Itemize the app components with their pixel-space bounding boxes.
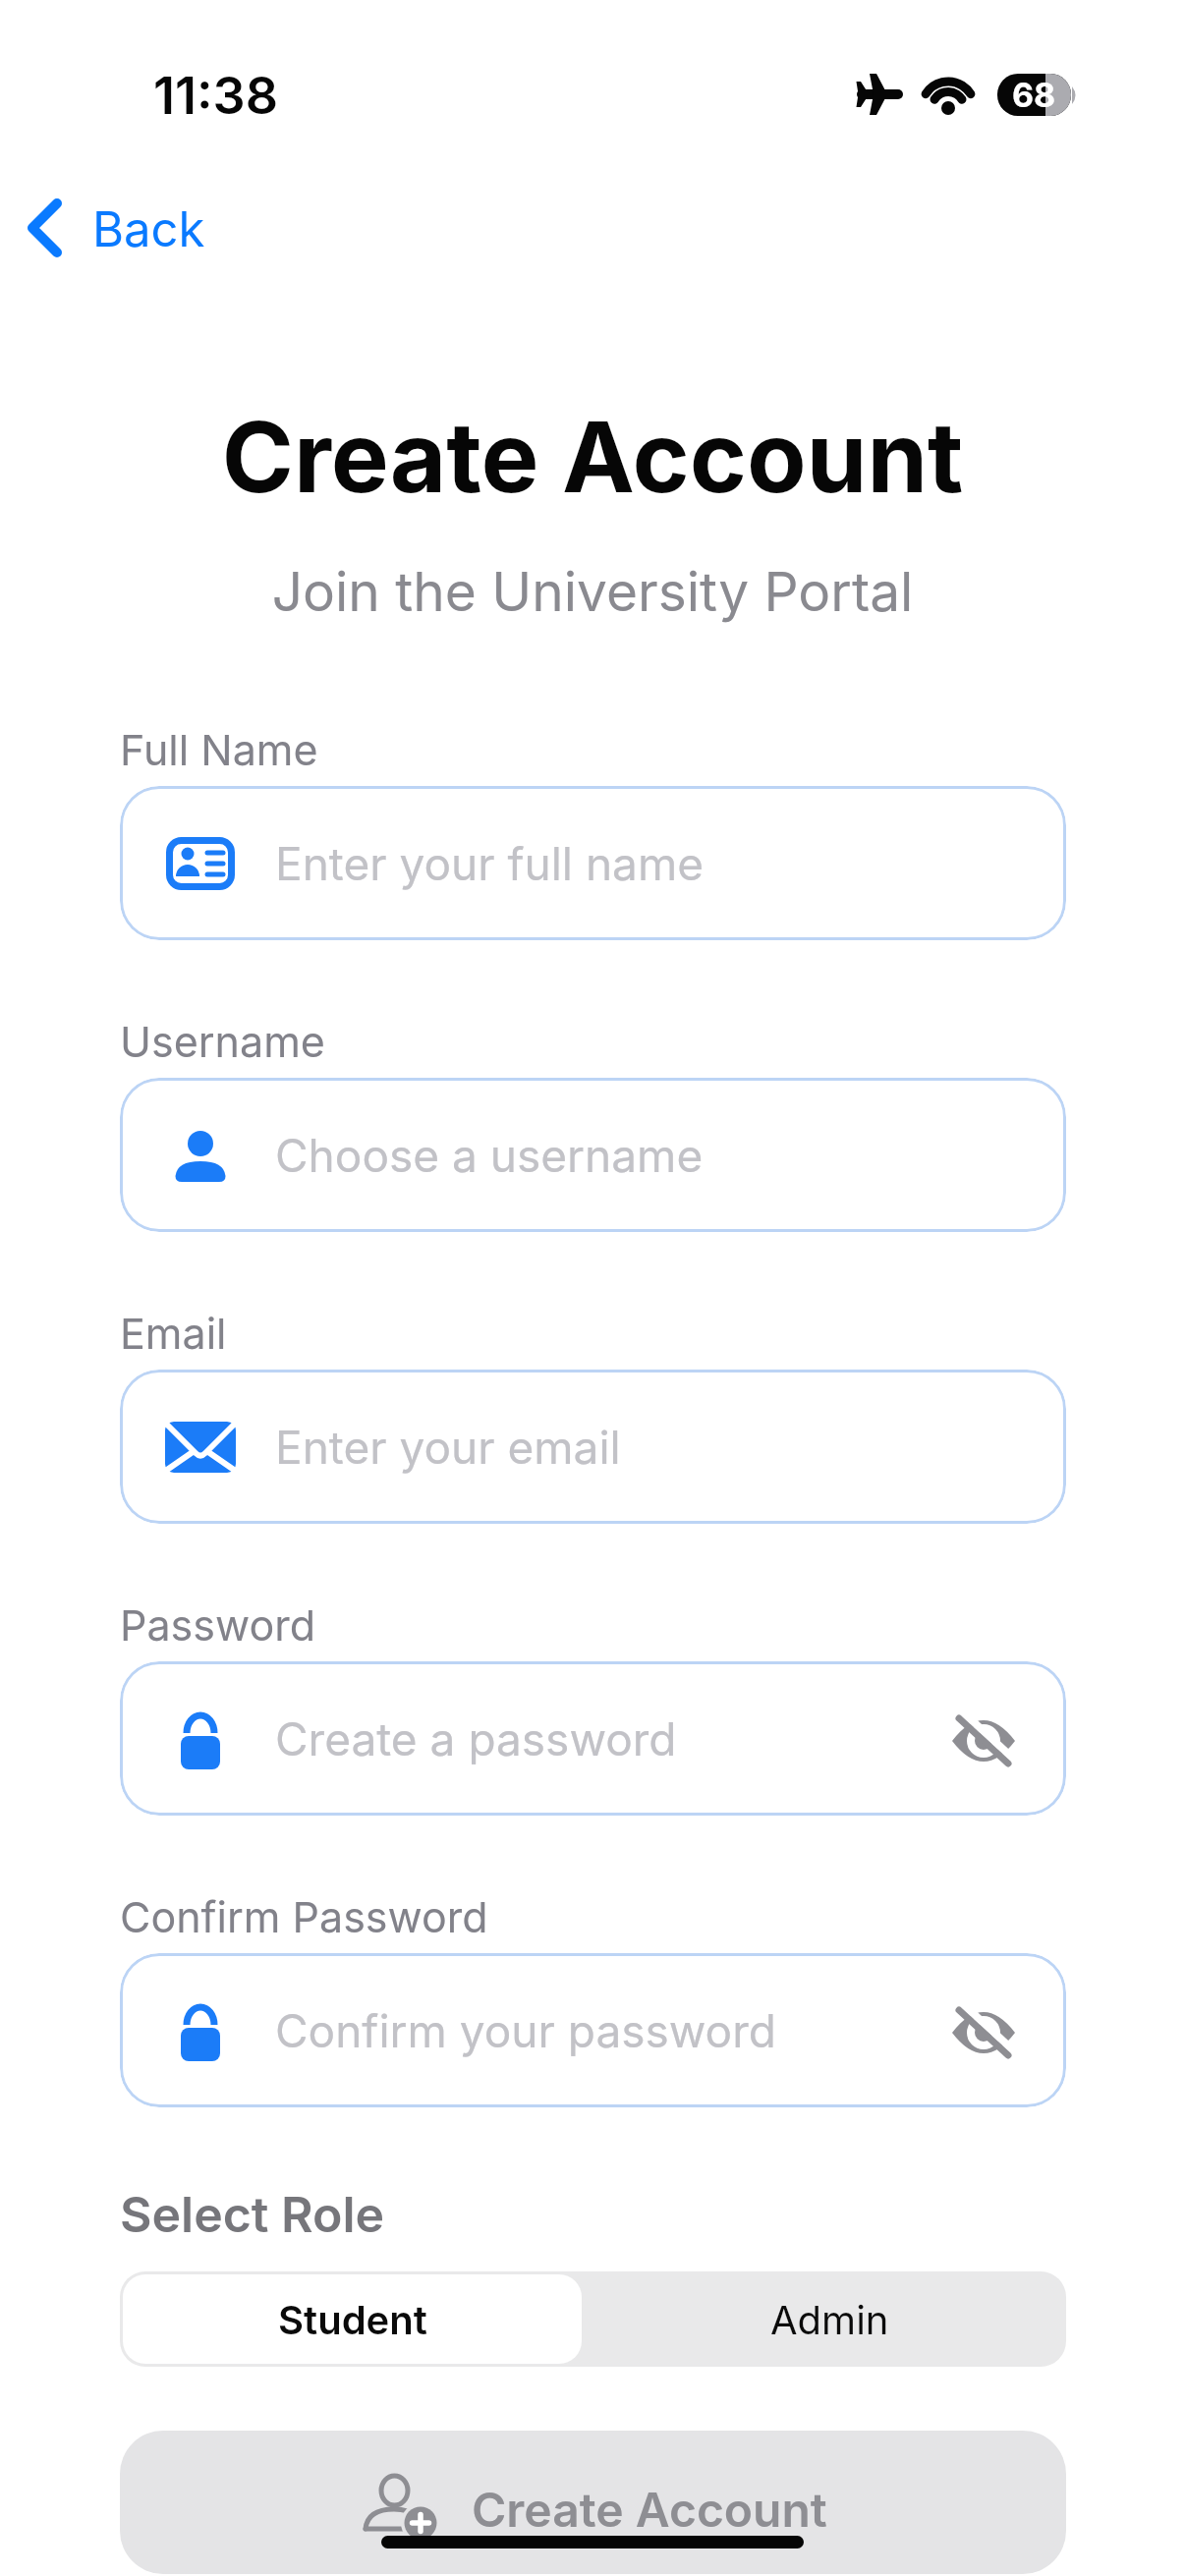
- button[interactable]: Enter your full name: [120, 786, 1066, 940]
- staticText: Choose a username: [275, 1128, 704, 1183]
- staticText: Join the University Portal: [0, 559, 1185, 625]
- staticText: 11:38: [153, 65, 278, 127]
- staticText: Select Role: [120, 2185, 385, 2244]
- staticText: 68: [1012, 75, 1056, 115]
- staticText: Email: [120, 1308, 227, 1359]
- button[interactable]: Confirm your password: [120, 1953, 1066, 2107]
- staticText: Username: [120, 1016, 325, 1067]
- button[interactable]: Student: [123, 2274, 582, 2364]
- staticText: Enter your full name: [275, 836, 705, 891]
- button[interactable]: Create a password: [120, 1661, 1066, 1816]
- staticText: Full Name: [120, 724, 318, 775]
- button[interactable]: Back: [20, 187, 216, 275]
- button[interactable]: Admin: [582, 2271, 1066, 2367]
- button[interactable]: Enter your email: [120, 1370, 1066, 1524]
- button[interactable]: Choose a username: [120, 1078, 1066, 1232]
- staticText: Enter your email: [275, 1420, 621, 1475]
- staticText: Back: [92, 200, 205, 258]
- staticText: Confirm Password: [120, 1891, 488, 1942]
- staticText: Admin: [770, 2296, 889, 2343]
- staticText: Create Account: [0, 398, 1185, 516]
- staticText: Create Account: [472, 2481, 827, 2538]
- staticText: Confirm your password: [275, 2003, 776, 2058]
- staticText: Password: [120, 1599, 316, 1651]
- staticText: Create a password: [275, 1711, 677, 1766]
- button[interactable]: Create Account: [120, 2431, 1066, 2574]
- staticText: Student: [278, 2296, 427, 2343]
